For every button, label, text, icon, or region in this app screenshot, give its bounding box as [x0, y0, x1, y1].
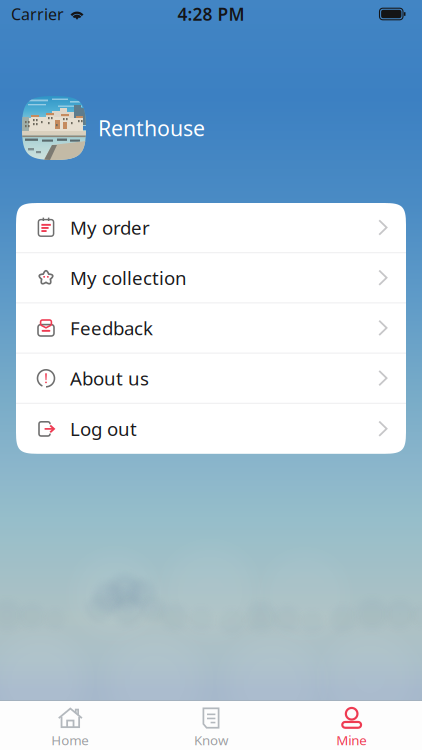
button[interactable]: My collection — [16, 253, 406, 303]
button[interactable]: Know — [141, 698, 281, 750]
staticText: 4:28 PM — [177, 2, 244, 25]
staticText: My collection — [70, 265, 187, 290]
button[interactable]: Log out — [16, 404, 406, 454]
staticText: Home — [51, 731, 89, 749]
staticText: My order — [70, 215, 150, 240]
staticText: Know — [194, 731, 228, 749]
staticText: Feedback — [70, 316, 153, 340]
button[interactable]: Home — [0, 698, 141, 750]
button[interactable]: About us — [16, 354, 406, 404]
staticText: Log out — [70, 416, 137, 441]
button[interactable]: My order — [16, 203, 406, 253]
staticText: About us — [70, 366, 149, 391]
button[interactable]: Feedback — [16, 303, 406, 354]
button[interactable]: Mine — [281, 698, 422, 750]
staticText: Renthouse — [98, 114, 205, 142]
staticText: Carrier — [11, 3, 64, 25]
staticText: Mine — [336, 731, 367, 749]
